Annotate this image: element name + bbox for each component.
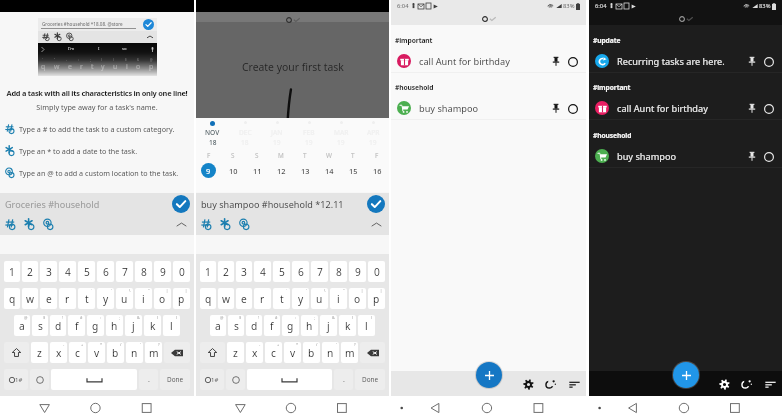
button[interactable]: e [236, 288, 252, 309]
button[interactable]: f [264, 315, 280, 336]
button[interactable]: w [22, 288, 38, 309]
button[interactable]: 16 [365, 162, 389, 179]
button[interactable]: 8 [135, 261, 152, 282]
button[interactable]: 9 [196, 162, 221, 179]
button[interactable]: b [303, 342, 320, 363]
button[interactable]: Settings [519, 375, 537, 393]
button[interactable]: k [339, 315, 356, 336]
button[interactable]: 13 [293, 162, 317, 179]
button[interactable]: 3 [236, 261, 252, 282]
button[interactable]: Collapse [175, 218, 188, 231]
button[interactable]: q [4, 288, 20, 309]
button[interactable]: d [50, 315, 66, 336]
button[interactable]: Add location [237, 217, 252, 232]
button[interactable]: q [200, 288, 216, 309]
button[interactable]: Night mode [542, 375, 560, 393]
button[interactable]: Type an * to add a date to the task. [5, 143, 194, 159]
button[interactable]: c [69, 342, 86, 363]
button[interactable]: Pin task [745, 54, 759, 68]
button[interactable]: 5 [273, 261, 290, 282]
button[interactable]: x [246, 342, 263, 363]
button[interactable]: 2 [218, 261, 234, 282]
button[interactable]: 6 [97, 261, 114, 282]
button[interactable]: Complete task [761, 54, 776, 69]
button[interactable]: 1 [200, 261, 216, 282]
button[interactable]: NOV [196, 121, 229, 147]
button[interactable]: x [50, 342, 67, 363]
button[interactable]: c [265, 342, 282, 363]
button[interactable]: u [311, 288, 328, 309]
button[interactable]: 12 [269, 162, 293, 179]
button[interactable]: z [31, 342, 48, 363]
button[interactable]: 10 [221, 162, 245, 179]
button[interactable]: v [284, 342, 301, 363]
button[interactable]: m [145, 342, 162, 363]
button[interactable]: r [254, 288, 271, 309]
button[interactable]: 11 [245, 162, 269, 179]
button[interactable]: 5 [78, 261, 95, 282]
button[interactable]: 14 [317, 162, 341, 179]
button[interactable]: Space [51, 369, 137, 390]
button[interactable]: 0 [173, 261, 190, 282]
button[interactable]: Settings [715, 375, 733, 393]
button[interactable]: l [358, 315, 375, 336]
button[interactable]: Period [334, 369, 353, 390]
button[interactable]: 2 [22, 261, 38, 282]
button[interactable]: a [14, 315, 30, 336]
button[interactable]: Backspace [164, 342, 190, 363]
button[interactable]: t [273, 288, 290, 309]
button[interactable]: 9 [154, 261, 171, 282]
button[interactable]: Type an @ to add a custom location to th… [5, 165, 194, 181]
button[interactable]: Add category [3, 217, 18, 232]
button[interactable]: Complete task [761, 149, 776, 164]
button[interactable]: w [218, 288, 234, 309]
button[interactable]: o [154, 288, 171, 309]
button[interactable]: Add category [199, 217, 214, 232]
button[interactable]: Night mode [738, 375, 756, 393]
button[interactable]: Pin task [745, 101, 759, 115]
button[interactable]: b [107, 342, 124, 363]
button[interactable]: h [106, 315, 123, 336]
button[interactable]: Collapse [370, 218, 383, 231]
button[interactable]: Add task [476, 362, 502, 388]
button[interactable]: u [116, 288, 133, 309]
button[interactable]: Emoji [226, 369, 245, 390]
button[interactable]: f [68, 315, 85, 336]
button[interactable]: 7 [311, 261, 328, 282]
button[interactable]: j [320, 315, 337, 336]
button[interactable]: Sort tasks [761, 375, 779, 393]
button[interactable]: Complete task [565, 54, 580, 69]
button[interactable]: 4 [254, 261, 271, 282]
button[interactable]: Recurring tasks are here. [589, 50, 782, 72]
button[interactable]: 9 [349, 261, 366, 282]
button[interactable]: i [330, 288, 347, 309]
button[interactable]: y [97, 288, 114, 309]
button[interactable]: Sort tasks [565, 375, 583, 393]
button[interactable]: d [246, 315, 262, 336]
button[interactable]: m [341, 342, 358, 363]
button[interactable]: call Aunt for birthday [391, 50, 586, 72]
button[interactable]: s [32, 315, 48, 336]
button[interactable]: Space [247, 369, 332, 390]
button[interactable]: g [87, 315, 104, 336]
button[interactable]: Shift [200, 342, 225, 363]
button[interactable]: Symbols [4, 369, 28, 390]
button[interactable]: g [282, 315, 299, 336]
button[interactable]: s [228, 315, 244, 336]
button[interactable]: t [78, 288, 95, 309]
button[interactable]: Confirm task [172, 195, 190, 213]
button[interactable]: y [292, 288, 309, 309]
button[interactable]: i [135, 288, 152, 309]
button[interactable]: 8 [330, 261, 347, 282]
button[interactable]: Complete task [761, 101, 776, 116]
button[interactable]: v [88, 342, 105, 363]
button[interactable]: a [210, 315, 226, 336]
button[interactable]: r [59, 288, 76, 309]
button[interactable]: buy shampoo [391, 97, 586, 119]
button[interactable]: Add date [22, 217, 37, 232]
button[interactable]: n [126, 342, 143, 363]
button[interactable]: Add location [41, 217, 56, 232]
button[interactable]: Type a # to add the task to a custom cat… [5, 121, 194, 137]
button[interactable]: p [368, 288, 385, 309]
